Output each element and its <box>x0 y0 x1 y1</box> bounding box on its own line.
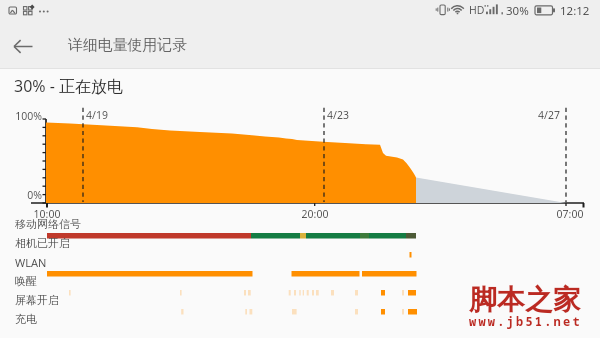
staticText: 20:00 <box>285 207 345 221</box>
staticText: 12:12 <box>560 3 590 19</box>
staticText: 10:00 <box>17 207 77 221</box>
staticText: 充电 <box>15 312 37 326</box>
staticText: 100% <box>2 109 42 123</box>
staticText: 唤醒 <box>15 274 37 288</box>
staticText: WLAN <box>15 255 47 270</box>
staticText: www.jb51.net <box>469 313 582 329</box>
staticText: 脚本之家 <box>469 283 581 318</box>
button[interactable]: Back <box>0 22 48 69</box>
staticText: 4/23 <box>327 108 349 122</box>
staticText: 4/19 <box>86 108 108 122</box>
staticText: 07:00 <box>540 207 600 221</box>
staticText: 4/27 <box>538 108 560 122</box>
staticText: 移动网络信号 <box>15 217 81 231</box>
staticText: HD <box>469 3 485 17</box>
staticText: 屏幕开启 <box>15 293 59 307</box>
staticText: 相机已开启 <box>15 236 70 250</box>
staticText: 30% - 正在放电 <box>14 75 124 97</box>
staticText: 30% <box>506 3 529 19</box>
staticText: 0% <box>2 188 42 202</box>
staticText: 详细电量使用记录 <box>68 36 188 55</box>
